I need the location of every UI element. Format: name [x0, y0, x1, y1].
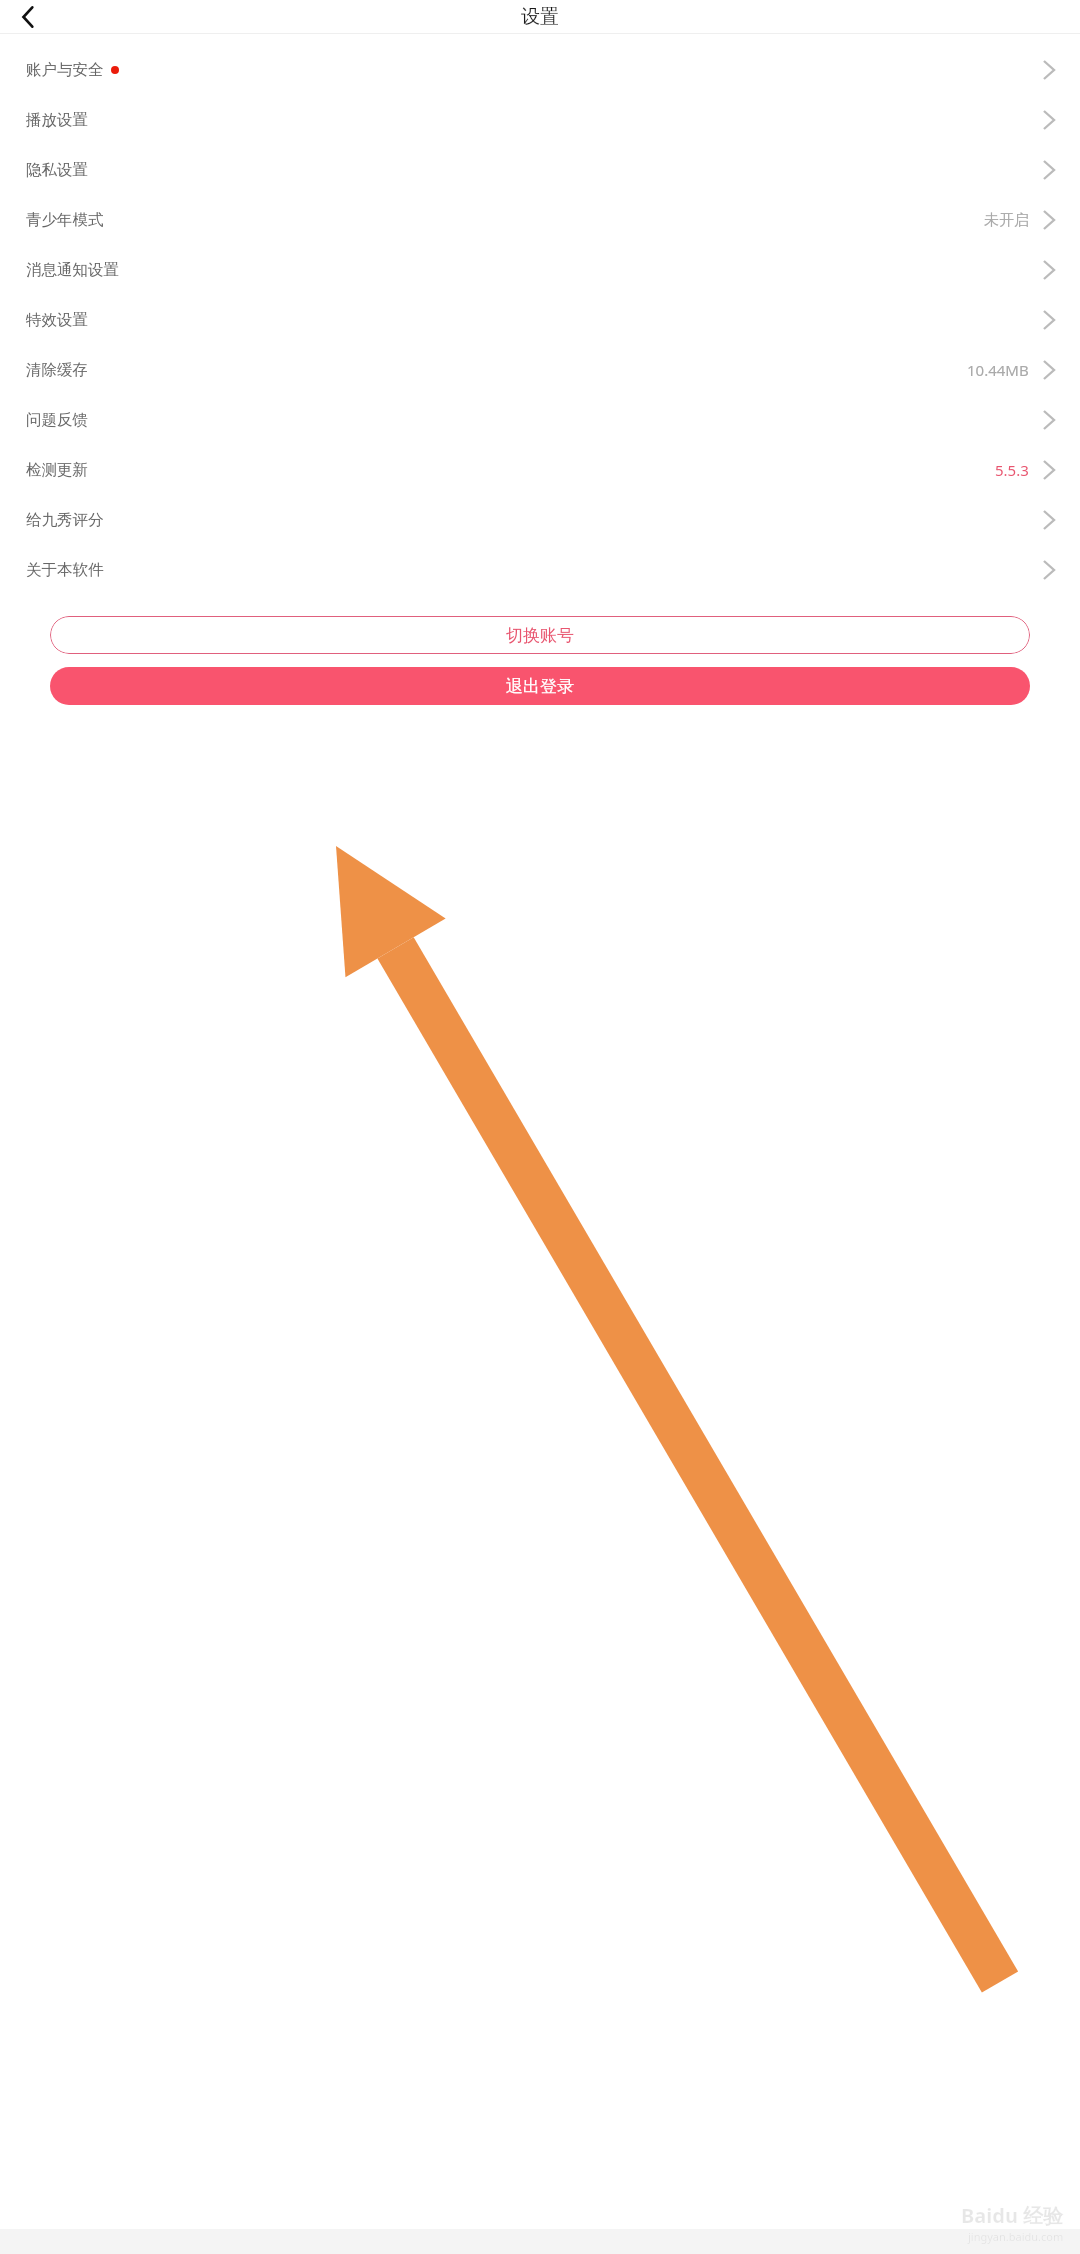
staticText: 5.5.3	[995, 460, 1029, 480]
staticText: 10.44MB	[967, 360, 1029, 380]
staticText: 退出登录	[506, 676, 574, 697]
button[interactable]: 退出登录	[50, 667, 1030, 705]
staticText: 账户与安全	[26, 60, 104, 80]
staticText: 隐私设置	[26, 160, 88, 180]
staticText: 消息通知设置	[26, 260, 119, 280]
staticText: Baidu 经验	[961, 2202, 1064, 2229]
button[interactable]: 消息通知设置	[0, 245, 1080, 295]
staticText: 播放设置	[26, 110, 88, 130]
button[interactable]: 给九秀评分	[0, 495, 1080, 545]
button[interactable]: 检测更新	[0, 445, 1080, 495]
staticText: 问题反馈	[26, 410, 88, 430]
button[interactable]: 青少年模式	[0, 195, 1080, 245]
button[interactable]: Back	[12, 1, 44, 33]
staticText: jingyan.baidu.com	[968, 2229, 1064, 2244]
staticText: 设置	[521, 5, 559, 29]
staticText: 清除缓存	[26, 360, 88, 380]
staticText: 关于本软件	[26, 560, 104, 580]
staticText: 青少年模式	[26, 210, 104, 230]
staticText: 检测更新	[26, 460, 88, 480]
button[interactable]: 清除缓存	[0, 345, 1080, 395]
button[interactable]: 隐私设置	[0, 145, 1080, 195]
button[interactable]: 关于本软件	[0, 545, 1080, 595]
button[interactable]: 账户与安全	[0, 45, 1080, 95]
staticText: 特效设置	[26, 310, 88, 330]
staticText: 给九秀评分	[26, 510, 104, 530]
staticText: 未开启	[984, 211, 1029, 230]
staticText: 切换账号	[506, 625, 574, 646]
button[interactable]: 播放设置	[0, 95, 1080, 145]
button[interactable]: 切换账号	[50, 616, 1030, 654]
button[interactable]: 问题反馈	[0, 395, 1080, 445]
button[interactable]: 特效设置	[0, 295, 1080, 345]
